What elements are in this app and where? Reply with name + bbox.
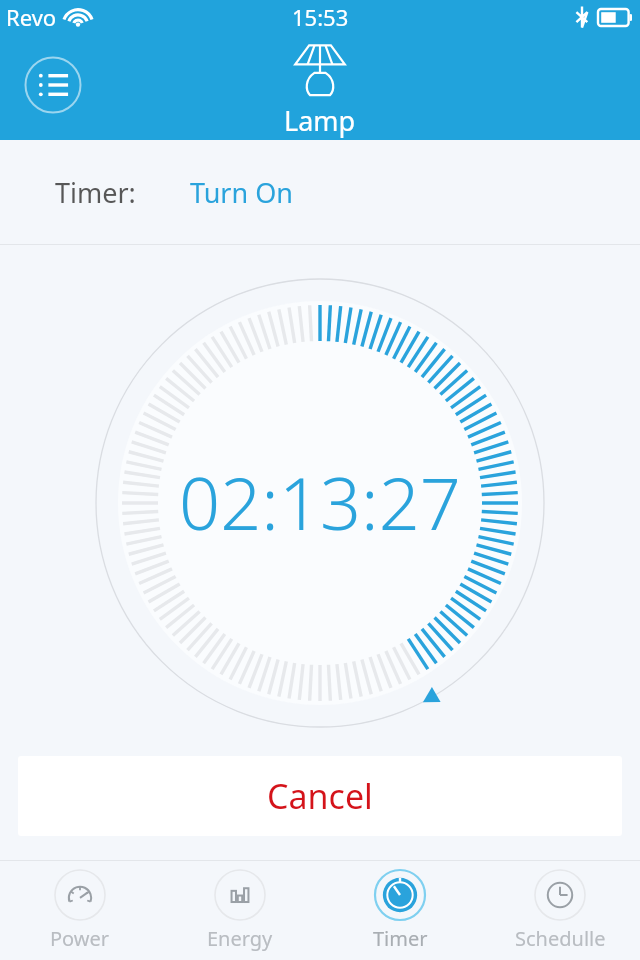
staticText: Timer bbox=[373, 925, 428, 952]
button[interactable]: Schedulle bbox=[480, 861, 640, 960]
button[interactable]: Power bbox=[0, 861, 160, 960]
button[interactable]: Lamp bbox=[284, 42, 356, 139]
staticText: Lamp bbox=[284, 102, 356, 139]
staticText: 02:13:27 bbox=[0, 453, 640, 551]
staticText: Schedulle bbox=[515, 925, 606, 952]
button[interactable]: Cancel bbox=[18, 756, 622, 836]
staticText: Turn On bbox=[190, 174, 293, 211]
button[interactable]: Timer: bbox=[0, 140, 640, 244]
button[interactable]: Energy bbox=[160, 861, 320, 960]
staticText: Timer: bbox=[55, 174, 136, 211]
staticText: Revo bbox=[6, 2, 57, 32]
staticText: 15:53 bbox=[292, 2, 349, 32]
staticText: Cancel bbox=[267, 773, 373, 819]
staticText: Power bbox=[50, 925, 110, 952]
staticText: Energy bbox=[207, 925, 273, 952]
button[interactable]: Menu bbox=[24, 56, 82, 114]
button[interactable]: Timer bbox=[320, 861, 480, 960]
